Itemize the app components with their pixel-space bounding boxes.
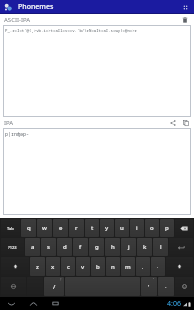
button[interactable]: More options — [179, 1, 191, 13]
button[interactable]: , — [136, 257, 150, 276]
button[interactable]: Enter — [169, 238, 193, 256]
button[interactable]: j — [121, 238, 136, 256]
button[interactable]: c — [61, 257, 75, 276]
button[interactable]: y — [100, 219, 114, 237]
staticText: " — [153, 278, 155, 282]
button[interactable]: Recent apps — [50, 298, 61, 309]
staticText: a — [31, 243, 35, 251]
staticText: . — [157, 264, 159, 269]
button[interactable]: q — [21, 219, 36, 237]
staticText: IPA — [4, 119, 14, 127]
staticText: e — [59, 224, 63, 232]
button[interactable]: Back — [6, 298, 17, 309]
button[interactable]: k — [137, 238, 152, 256]
button[interactable]: w — [37, 219, 52, 237]
button[interactable]: Tab — [1, 219, 20, 237]
staticText: m — [125, 263, 131, 271]
staticText: P_.r=I=t'@(,>vb.i=>t=aIl=v==v.'b/\rN=aIt… — [5, 28, 137, 33]
staticText: - — [165, 284, 167, 289]
button[interactable]: e — [53, 219, 68, 237]
staticText: v — [81, 263, 85, 271]
button[interactable]: l — [153, 238, 168, 256]
button[interactable]: i — [130, 219, 144, 237]
button[interactable]: Home — [28, 298, 39, 309]
button[interactable]: Clear — [180, 15, 190, 25]
staticText: r — [75, 224, 78, 232]
button[interactable]: f — [73, 238, 88, 256]
button[interactable]: Backspace — [175, 219, 193, 237]
button[interactable]: h — [105, 238, 120, 256]
staticText: q — [27, 224, 31, 232]
staticText: Phonemes — [18, 2, 54, 12]
button[interactable]: . — [151, 257, 165, 276]
staticText: l — [160, 243, 162, 251]
button[interactable]: Emoji — [175, 277, 193, 296]
staticText: ?123 — [8, 245, 17, 250]
button[interactable]: u — [115, 219, 129, 237]
staticText: h — [111, 243, 115, 251]
staticText: ASCII-IPA — [4, 16, 31, 24]
button[interactable]: Shift — [1, 257, 29, 276]
button[interactable]: ?123 — [1, 238, 24, 256]
staticText: c — [67, 263, 70, 271]
button[interactable]: d — [57, 238, 72, 256]
button[interactable]: p — [160, 219, 174, 237]
button[interactable]: g — [89, 238, 104, 256]
staticText: n — [111, 263, 115, 271]
staticText: x — [51, 263, 55, 271]
button[interactable]: App icon — [3, 2, 14, 13]
button[interactable]: Change language — [1, 277, 26, 296]
button[interactable]: z — [30, 257, 45, 276]
button[interactable]: r — [69, 219, 84, 237]
button[interactable]: ' — [141, 277, 157, 296]
staticText: w — [42, 224, 47, 232]
button[interactable]: b — [91, 257, 105, 276]
staticText: / — [53, 283, 56, 291]
staticText: z — [36, 263, 39, 271]
button[interactable]: - — [158, 277, 174, 296]
button[interactable]: n — [106, 257, 120, 276]
button[interactable]: Share — [168, 118, 178, 128]
staticText: p|ɪnʤəp- — [5, 131, 30, 138]
button[interactable]: a — [25, 238, 40, 256]
staticText: o — [150, 224, 154, 232]
staticText: u — [120, 224, 124, 232]
staticText: Tab — [7, 226, 14, 231]
staticText: i — [136, 224, 138, 232]
staticText: g — [95, 243, 99, 251]
staticText: ' — [148, 283, 150, 291]
staticText: b — [96, 263, 100, 271]
button[interactable]: x — [46, 257, 60, 276]
button[interactable]: v — [76, 257, 90, 276]
staticText: t — [91, 224, 94, 232]
staticText: 4:06 — [167, 299, 181, 309]
button[interactable]: t — [85, 219, 99, 237]
staticText: y — [105, 224, 109, 232]
button[interactable]: Copy — [181, 118, 191, 128]
staticText: ? — [60, 278, 62, 282]
button[interactable]: m — [121, 257, 135, 276]
button[interactable]: Shift — [166, 257, 193, 276]
staticText: j — [128, 243, 130, 251]
staticText: s — [47, 243, 50, 251]
button[interactable]: o — [145, 219, 159, 237]
staticText: , — [142, 264, 144, 269]
staticText: d — [63, 243, 67, 251]
button[interactable]: / — [44, 277, 64, 296]
button[interactable]: s — [41, 238, 56, 256]
staticText: k — [143, 243, 147, 251]
staticText: f — [79, 243, 82, 251]
staticText: p — [165, 224, 169, 232]
